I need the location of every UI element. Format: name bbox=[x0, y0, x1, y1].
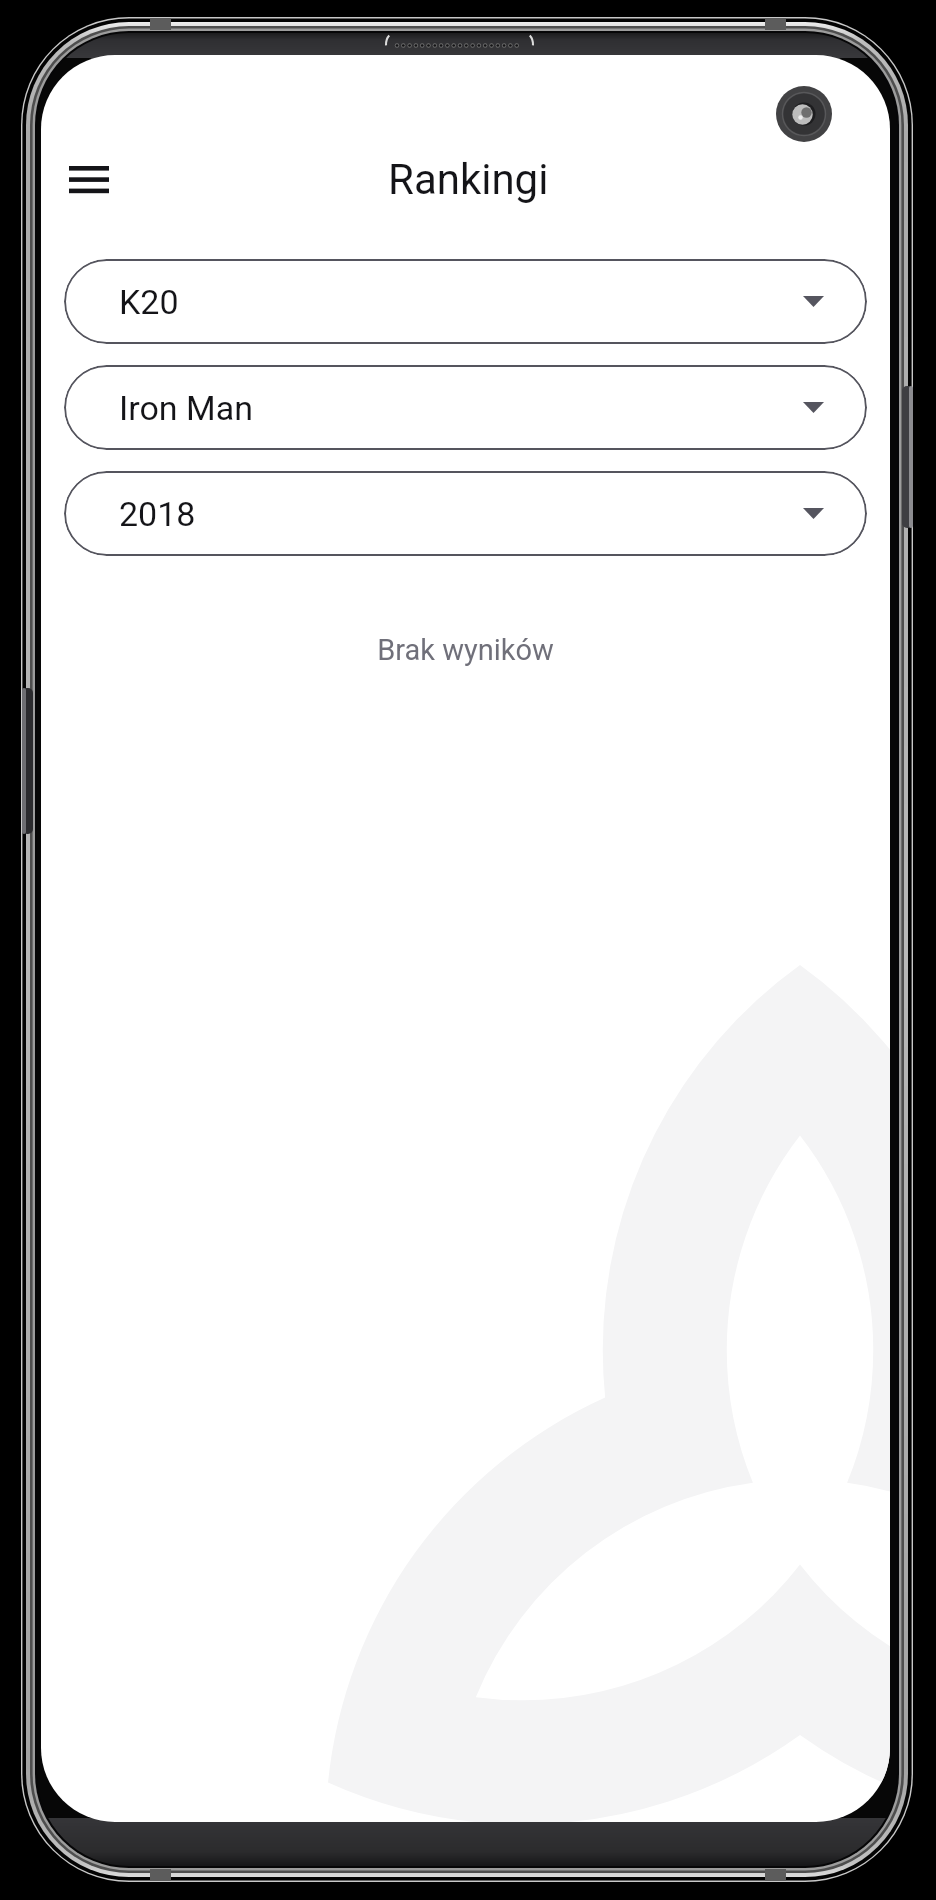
staticText: Rankingi bbox=[388, 155, 549, 204]
staticText: 2018 bbox=[119, 494, 196, 534]
staticText: Iron Man bbox=[119, 388, 253, 428]
button[interactable]: Iron Man bbox=[64, 365, 867, 450]
staticText: Brak wyników bbox=[377, 633, 554, 667]
staticText: K20 bbox=[119, 282, 179, 322]
button[interactable]: 2018 bbox=[64, 471, 867, 556]
button[interactable]: Open navigation menu bbox=[57, 147, 121, 211]
button[interactable]: K20 bbox=[64, 259, 867, 344]
